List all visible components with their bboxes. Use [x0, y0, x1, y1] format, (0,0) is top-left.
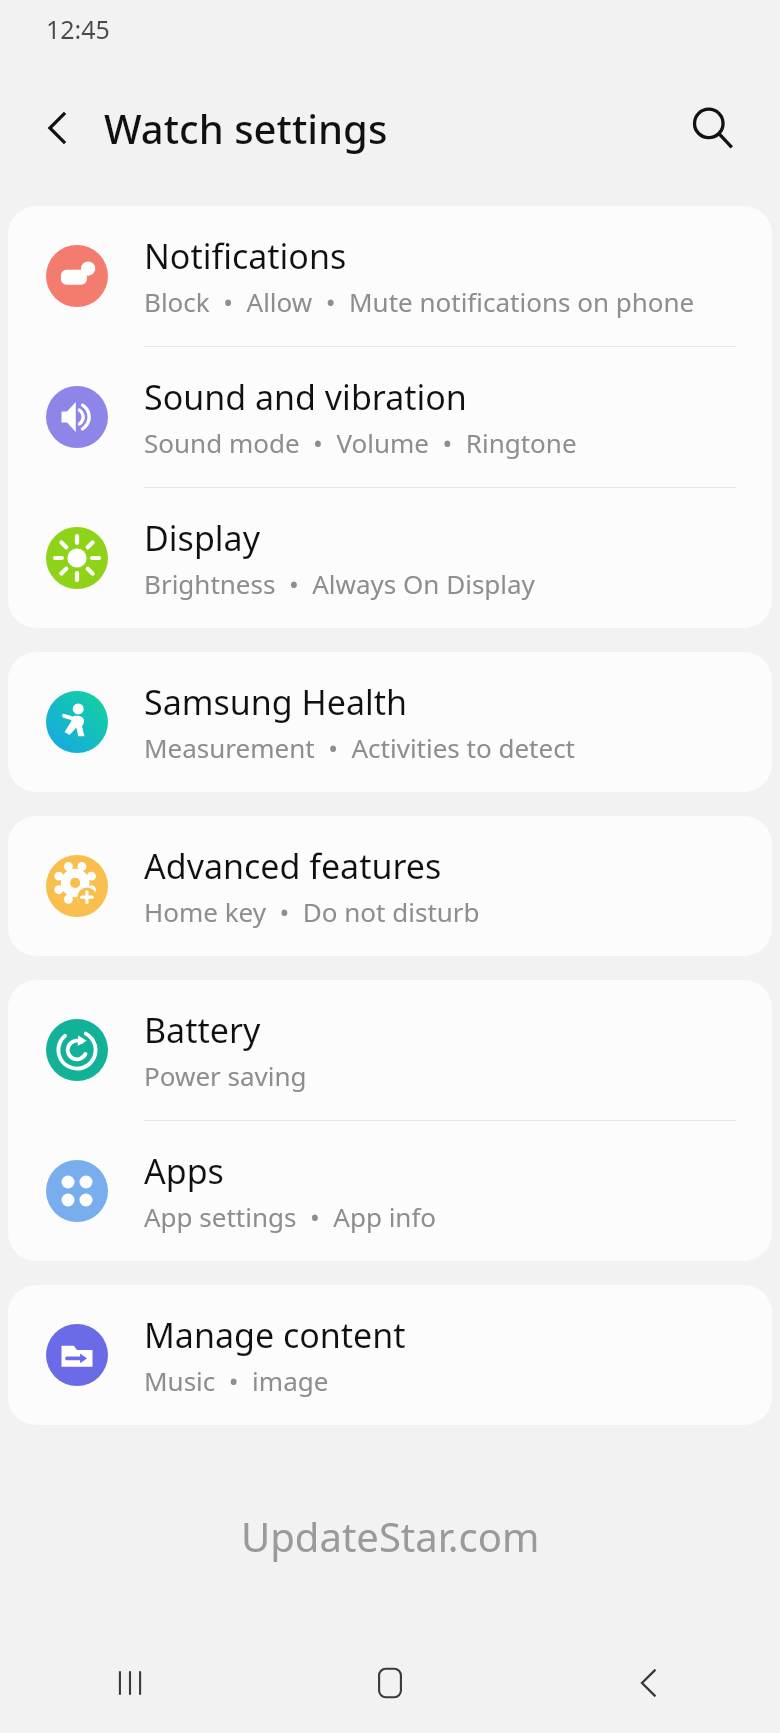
button[interactable]: Back: [585, 1633, 715, 1733]
staticText: Power saving: [144, 1058, 307, 1093]
button[interactable]: Notifications: [8, 206, 772, 346]
button[interactable]: Advanced features: [8, 816, 772, 956]
staticText: Brightness • Always On Display: [144, 566, 535, 601]
staticText: UpdateStar.com: [241, 1509, 540, 1563]
button[interactable]: Battery: [8, 980, 772, 1120]
staticText: Block • Allow • Mute notifications on ph…: [144, 284, 695, 319]
button[interactable]: Manage content: [8, 1285, 772, 1425]
staticText: Advanced features: [144, 843, 442, 889]
staticText: Display: [144, 515, 260, 561]
button[interactable]: Home: [325, 1633, 455, 1733]
staticText: App settings • App info: [144, 1199, 437, 1234]
staticText: Watch settings: [104, 101, 388, 155]
staticText: Manage content: [144, 1312, 406, 1358]
staticText: Notifications: [144, 233, 347, 279]
staticText: Samsung Health: [144, 679, 408, 725]
button[interactable]: Apps: [8, 1121, 772, 1261]
staticText: Sound mode • Volume • Ringtone: [144, 425, 577, 460]
button[interactable]: Display: [8, 488, 772, 628]
staticText: Home key • Do not disturb: [144, 894, 480, 929]
staticText: 12:45: [46, 12, 110, 46]
button[interactable]: Search: [674, 90, 750, 166]
staticText: Music • image: [144, 1363, 329, 1398]
button[interactable]: Back: [24, 93, 94, 163]
staticText: Apps: [144, 1148, 224, 1194]
button[interactable]: Samsung Health: [8, 652, 772, 792]
staticText: Battery: [144, 1007, 261, 1053]
button[interactable]: Recent apps: [65, 1633, 195, 1733]
staticText: Measurement • Activities to detect: [144, 730, 576, 765]
button[interactable]: Sound and vibration: [8, 347, 772, 487]
staticText: Sound and vibration: [144, 374, 467, 420]
